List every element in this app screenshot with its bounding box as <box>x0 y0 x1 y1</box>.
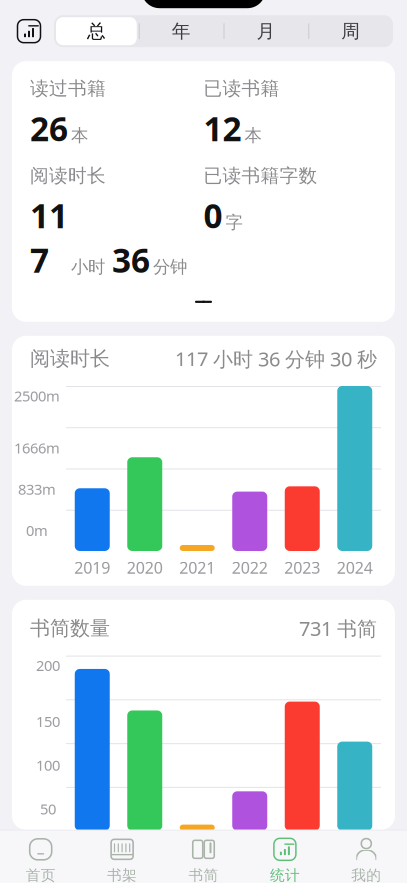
staticText: 36 <box>112 238 150 282</box>
staticText: 2019 <box>74 557 110 578</box>
staticText: 731 书简 <box>299 615 377 642</box>
staticText: 统计 <box>270 866 300 883</box>
staticText: 117 <box>30 193 68 282</box>
button[interactable]: 我的 <box>326 830 407 883</box>
staticText: 26 <box>30 106 68 150</box>
staticText: 月 <box>256 20 275 43</box>
button[interactable]: 书架 <box>81 830 163 883</box>
staticText: 书简 <box>188 866 218 883</box>
staticText: 117 小时 36 分钟 30 秒 <box>175 345 377 372</box>
staticText: 书架 <box>107 866 137 883</box>
button[interactable]: 总 <box>54 15 139 47</box>
staticText: 阅读时长 <box>30 346 110 371</box>
staticText: 2023 <box>284 557 320 578</box>
button[interactable]: 统计 <box>244 830 326 883</box>
button[interactable]: 统计图标 <box>14 15 44 47</box>
staticText: 12 <box>203 106 241 150</box>
staticText: 本 <box>71 125 88 146</box>
button[interactable]: 月 <box>223 15 308 47</box>
staticText: 我的 <box>351 866 381 883</box>
staticText: 2024 <box>337 557 373 578</box>
staticText: 字 <box>225 212 242 233</box>
staticText: 50 <box>40 799 56 818</box>
staticText: 1666m <box>14 438 60 458</box>
staticText: 已读书籍 <box>203 77 279 100</box>
staticText: 本 <box>244 125 261 146</box>
staticText: 2500m <box>14 386 60 405</box>
staticText: 小时 <box>71 256 105 277</box>
staticText: 年 <box>172 20 191 43</box>
button[interactable]: 展开更多 <box>30 296 377 312</box>
staticText: 2022 <box>232 557 268 578</box>
staticText: 0m <box>26 521 48 540</box>
staticText: 2021 <box>179 557 215 578</box>
staticText: 已读书籍字数 <box>203 164 317 187</box>
staticText: 2020 <box>127 557 163 578</box>
staticText: 阅读时长 <box>30 164 106 187</box>
button[interactable]: 首页 <box>0 830 81 883</box>
staticText: 周 <box>341 20 360 43</box>
staticText: 书简数量 <box>30 616 110 641</box>
staticText: 0 <box>203 193 222 238</box>
button[interactable]: 年 <box>139 15 224 47</box>
staticText: 100 <box>36 755 60 775</box>
staticText: 分钟 <box>153 256 187 277</box>
button[interactable]: 书简 <box>163 830 244 883</box>
staticText: 200 <box>36 656 60 675</box>
staticText: 首页 <box>26 866 56 883</box>
staticText: 150 <box>36 711 60 731</box>
staticText: 833m <box>18 479 56 499</box>
staticText: 总 <box>87 20 106 43</box>
staticText: 读过书籍 <box>30 77 106 100</box>
button[interactable]: 周 <box>308 15 393 47</box>
